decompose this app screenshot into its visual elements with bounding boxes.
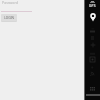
button[interactable]: Location [85, 12, 100, 23]
button[interactable]: Password [2, 0, 19, 5]
button[interactable]: LOGIN [1, 14, 17, 21]
button[interactable]: More [85, 85, 100, 92]
button[interactable]: Battery [85, 34, 100, 41]
button[interactable]: GPS tab [85, 0, 100, 8]
button[interactable]: Directional pad [85, 41, 100, 48]
staticText: LOGIN [4, 16, 14, 20]
button[interactable]: Phone [85, 49, 100, 56]
button[interactable]: Cellular [85, 70, 100, 77]
staticText: GPS [89, 4, 96, 8]
staticText: Password [2, 0, 19, 5]
button[interactable]: Camera [85, 27, 100, 34]
button[interactable]: Screenshot [85, 56, 100, 63]
